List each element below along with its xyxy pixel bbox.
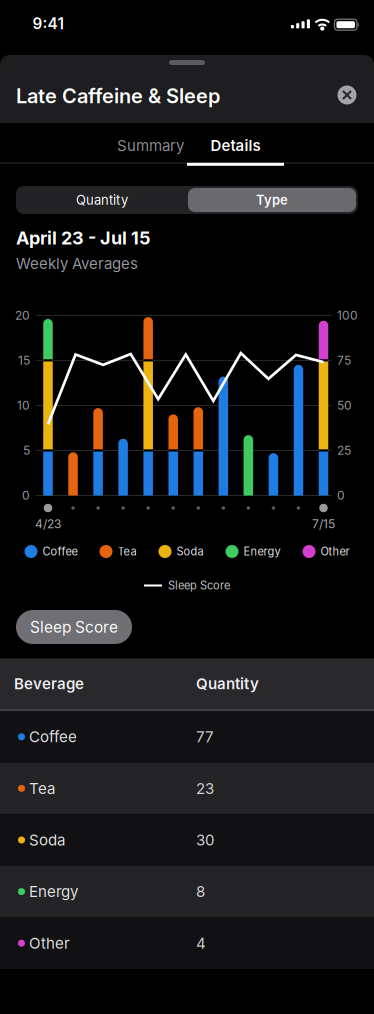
staticText: Beverage [14,675,84,693]
staticText: 4 [196,934,206,952]
staticText: Coffee [29,728,77,746]
staticText: Soda [29,831,65,849]
button[interactable]: Summary [102,126,199,164]
staticText: Tea [117,545,136,558]
staticText: 50 [337,398,352,413]
staticText: Other [320,545,349,558]
staticText: 77 [196,728,214,746]
staticText: Other [29,934,70,952]
staticText: Weekly Averages [16,254,138,273]
staticText: 75 [337,353,351,368]
staticText: Sleep Score [30,618,118,636]
button[interactable]: Type [188,188,356,212]
staticText: Sleep Score [168,579,230,592]
staticText: Details [210,136,260,154]
staticText: 10 [17,398,30,413]
staticText: 5 [23,443,30,458]
staticText: Energy [243,545,280,558]
staticText: 0 [22,488,30,503]
staticText: 7/15 [312,517,335,531]
staticText: Summary [117,136,184,154]
staticText: Coffee [42,545,77,558]
staticText: Soda [176,545,203,558]
staticText: 100 [337,308,358,322]
staticText: Late Caffeine & Sleep [16,84,220,108]
staticText: 20 [15,308,30,322]
staticText: Energy [29,882,78,901]
button[interactable]: Close [332,80,362,110]
staticText: Quantity [196,675,259,693]
staticText: 8 [196,882,205,901]
staticText: Type [256,192,288,208]
staticText: 30 [196,831,215,849]
button[interactable]: Quantity [18,188,186,212]
button[interactable]: Sleep Score [16,610,132,644]
staticText: Quantity [76,192,128,208]
staticText: April 23 - Jul 15 [16,227,151,249]
staticText: 0 [337,488,345,503]
staticText: 25 [337,443,351,458]
staticText: Tea [29,779,55,797]
staticText: 23 [196,779,214,797]
button[interactable]: Details [187,126,284,164]
staticText: 9:41 [32,14,63,33]
staticText: 15 [18,353,30,368]
staticText: 4/23 [35,517,61,531]
